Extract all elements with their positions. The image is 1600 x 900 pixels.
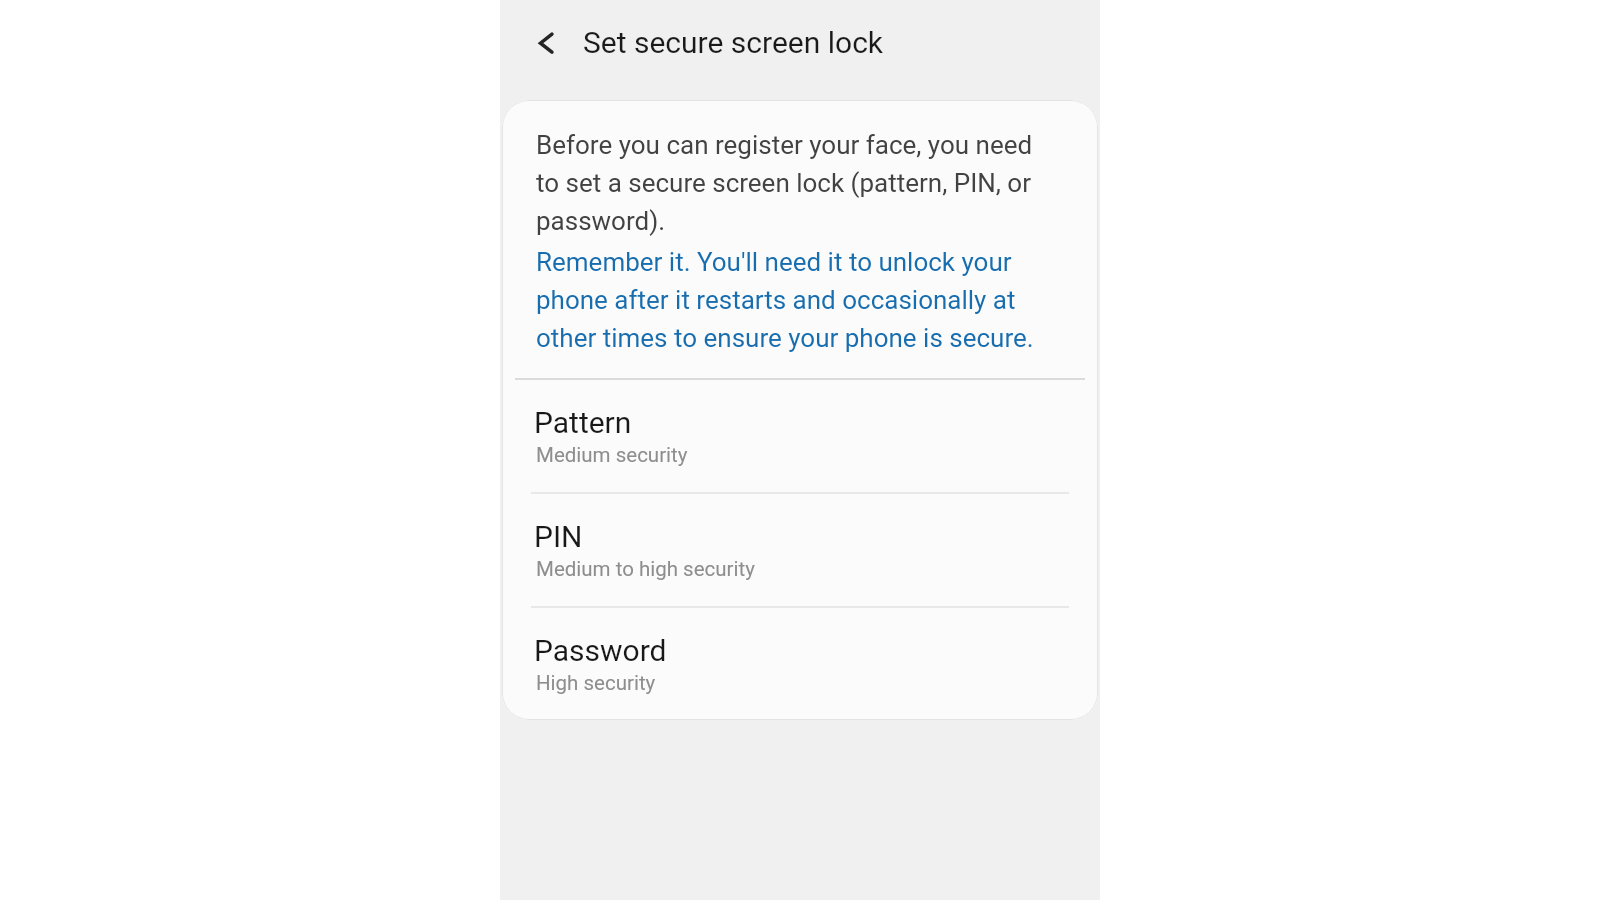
- button[interactable]: Pattern: [502, 380, 1098, 492]
- staticText: High security: [536, 671, 656, 695]
- button[interactable]: [534, 29, 560, 55]
- staticText: Password: [534, 633, 667, 668]
- staticText: Medium security: [536, 443, 688, 467]
- staticText: Set secure screen lock: [583, 25, 884, 60]
- staticText: PIN: [534, 519, 583, 554]
- staticText: Pattern: [534, 405, 632, 440]
- button[interactable]: PIN: [502, 494, 1098, 606]
- staticText: Remember it. You'll need it to unlock yo…: [536, 247, 1034, 353]
- staticText: Medium to high security: [536, 557, 755, 581]
- button[interactable]: Password: [502, 608, 1098, 720]
- staticText: Before you can register your face, you n…: [536, 130, 1033, 236]
